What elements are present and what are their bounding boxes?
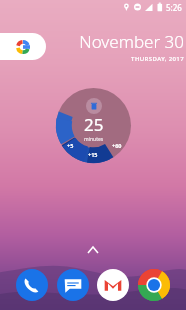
button[interactable]: Open app drawer	[81, 242, 105, 258]
button[interactable]: Google Search	[0, 33, 46, 60]
button[interactable]: +5	[67, 142, 74, 149]
button[interactable]: Messages	[56, 268, 90, 302]
other: Timer widget	[56, 88, 131, 163]
button[interactable]: November 30	[78, 30, 184, 63]
staticText: 25	[84, 113, 104, 136]
button[interactable]: Chrome	[137, 268, 171, 302]
button[interactable]: 25	[84, 113, 104, 143]
staticText: THURSDAY, 2017	[131, 55, 184, 63]
button[interactable]: +15	[88, 151, 98, 158]
button[interactable]: Gmail	[96, 268, 130, 302]
staticText: 5:26	[166, 2, 182, 13]
button[interactable]: Delete timer	[86, 98, 102, 114]
button[interactable]: +60	[112, 142, 122, 149]
button[interactable]: Phone	[15, 268, 49, 302]
staticText: minutes	[84, 136, 104, 143]
staticText: November 30	[79, 30, 184, 53]
